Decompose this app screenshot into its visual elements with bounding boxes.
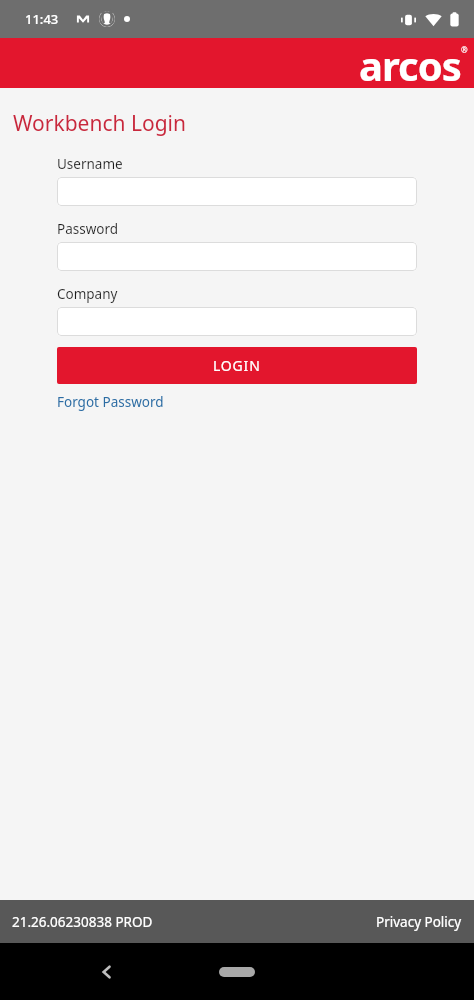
button[interactable]: Back: [92, 957, 122, 987]
button[interactable]: Forgot Password: [57, 393, 164, 411]
button[interactable]: [57, 242, 417, 271]
staticText: Privacy Policy: [376, 913, 462, 931]
staticText: ®: [461, 44, 468, 55]
staticText: 11:43: [25, 10, 59, 28]
staticText: Company: [57, 285, 118, 303]
staticText: Password: [57, 220, 119, 238]
button[interactable]: Home: [219, 967, 255, 977]
staticText: LOGIN: [213, 356, 261, 375]
button[interactable]: Privacy Policy: [376, 913, 462, 931]
staticText: 21.26.06230838 PROD: [12, 913, 153, 931]
button[interactable]: [57, 307, 417, 336]
button[interactable]: LOGIN: [57, 347, 417, 384]
button[interactable]: [57, 177, 417, 206]
staticText: arcos: [359, 38, 461, 88]
staticText: Username: [57, 155, 123, 173]
staticText: Forgot Password: [57, 393, 164, 411]
staticText: Workbench Login: [13, 109, 186, 138]
